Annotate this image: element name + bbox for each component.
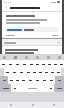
button[interactable]: Enter <box>54 84 64 92</box>
button[interactable] <box>7 60 14 68</box>
button[interactable] <box>52 60 58 68</box>
button[interactable] <box>14 60 21 68</box>
button[interactable]: Back <box>0 102 22 108</box>
button[interactable] <box>27 76 34 84</box>
button[interactable]: Symbols <box>0 84 11 92</box>
button[interactable] <box>55 68 61 76</box>
button[interactable] <box>46 60 52 68</box>
button[interactable] <box>34 60 40 68</box>
button[interactable] <box>58 60 64 68</box>
button[interactable] <box>48 76 55 84</box>
button[interactable] <box>5 48 59 52</box>
button[interactable] <box>5 52 59 54</box>
button[interactable] <box>47 84 54 92</box>
button[interactable] <box>34 76 41 84</box>
button[interactable]: Recents <box>43 102 64 108</box>
button[interactable] <box>14 76 20 84</box>
button[interactable] <box>11 84 18 92</box>
button[interactable] <box>25 68 31 76</box>
other: Back <box>5 6 8 9</box>
button[interactable] <box>4 68 11 76</box>
button[interactable] <box>49 68 55 76</box>
button[interactable] <box>43 68 49 76</box>
button[interactable]: Search <box>2 39 62 45</box>
button[interactable] <box>18 84 47 92</box>
button[interactable] <box>11 68 18 76</box>
button[interactable] <box>31 68 37 76</box>
button[interactable]: Backspace <box>55 76 64 84</box>
button[interactable] <box>41 76 48 84</box>
button[interactable] <box>20 76 27 84</box>
button[interactable]: Keyboard tool 2 <box>14 56 17 59</box>
button[interactable] <box>21 60 28 68</box>
button[interactable] <box>5 27 59 32</box>
button[interactable] <box>0 60 7 68</box>
button[interactable]: Shift <box>0 76 8 84</box>
button[interactable] <box>40 60 46 68</box>
button[interactable] <box>8 76 14 84</box>
button[interactable]: Home <box>22 102 43 108</box>
button[interactable] <box>18 68 25 76</box>
button[interactable] <box>37 68 43 76</box>
button[interactable] <box>28 60 34 68</box>
button[interactable]: Back <box>2 4 62 11</box>
